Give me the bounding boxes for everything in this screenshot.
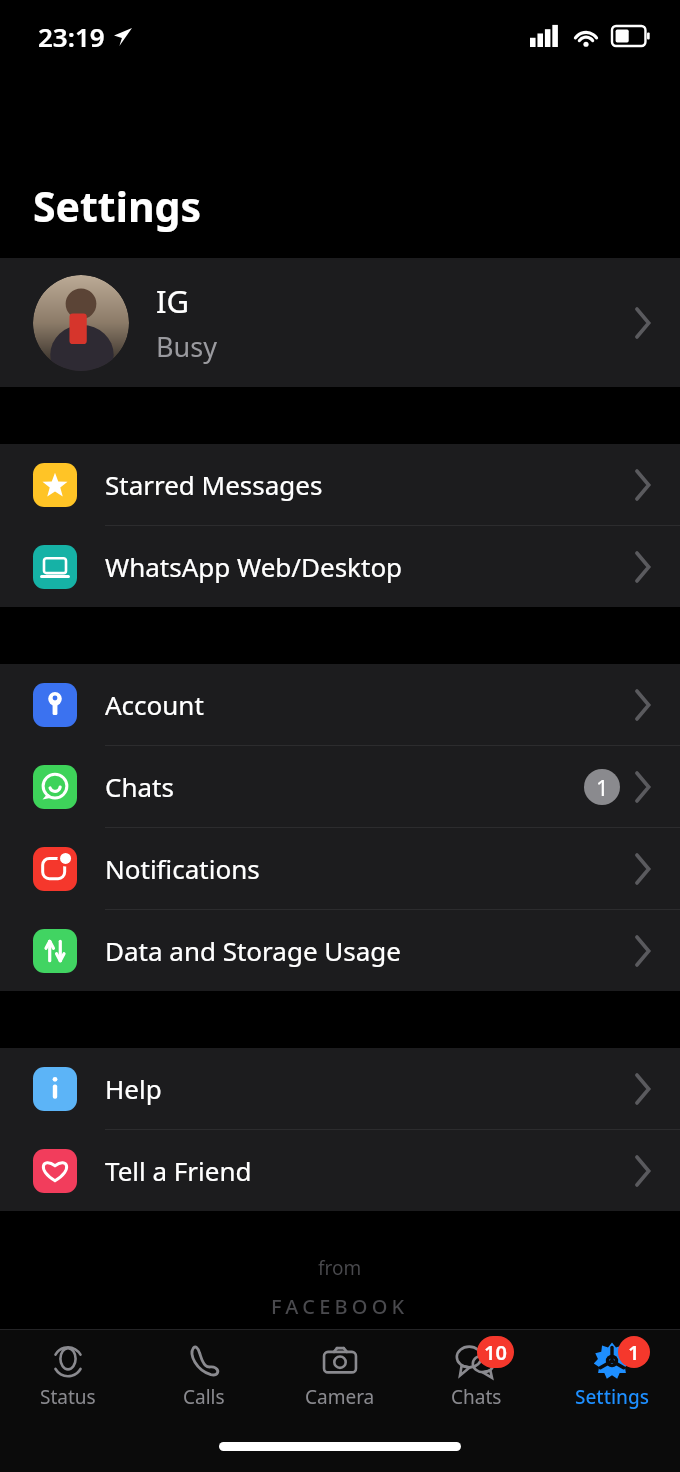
staticText: Help [105,1071,634,1106]
staticText: Calls [183,1384,225,1410]
button[interactable]: Chats [0,746,680,827]
staticText: 1 [596,772,609,802]
button[interactable]: Status [0,1330,136,1420]
button[interactable]: Help [0,1048,680,1129]
staticText: Chats [105,769,584,804]
staticText: Busy [156,328,217,365]
button[interactable]: Calls [136,1330,272,1420]
staticText: Chats [451,1384,502,1410]
staticText: from [318,1255,362,1281]
staticText: Starred Messages [105,467,634,502]
staticText: 10 [484,1339,507,1366]
button[interactable]: Tell a Friend [0,1130,680,1211]
button[interactable]: Starred Messages [0,444,680,525]
button[interactable]: Settings [544,1330,680,1420]
button[interactable]: Camera [272,1330,408,1420]
staticText: 23:19 [38,19,105,54]
staticText: Camera [305,1384,375,1410]
button[interactable]: IG [0,258,680,387]
staticText: Account [105,687,634,722]
staticText: 1 [628,1339,640,1366]
staticText: IG [156,280,190,322]
button[interactable]: Data and Storage Usage [0,910,680,991]
staticText: WhatsApp Web/Desktop [105,549,634,584]
staticText: Settings [33,178,202,234]
staticText: Status [40,1384,96,1410]
button[interactable]: Notifications [0,828,680,909]
staticText: FACEBOOK [271,1293,409,1320]
button[interactable]: Chats [408,1330,544,1420]
staticText: Tell a Friend [105,1153,634,1188]
button[interactable]: Account [0,664,680,745]
staticText: Settings [575,1384,649,1410]
staticText: Notifications [105,851,634,886]
button[interactable]: WhatsApp Web/Desktop [0,526,680,607]
staticText: Data and Storage Usage [105,933,634,968]
